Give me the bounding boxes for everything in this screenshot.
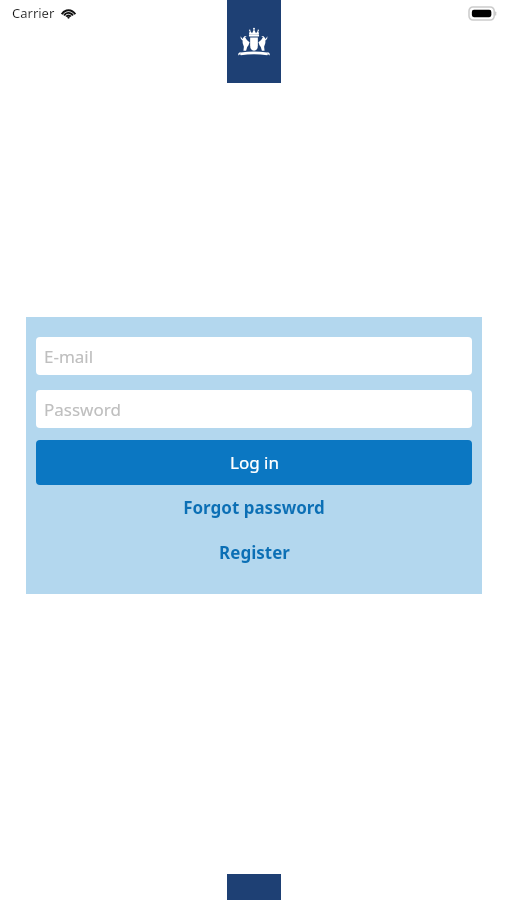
button[interactable]: Password [36, 390, 472, 428]
button[interactable]: Log in [36, 440, 472, 485]
button[interactable]: E-mail [36, 337, 472, 375]
staticText: Password [44, 398, 121, 421]
staticText: Register [219, 541, 290, 564]
staticText: Carrier [12, 4, 55, 22]
staticText: Log in [230, 451, 279, 474]
button[interactable]: Register [36, 530, 472, 574]
staticText: E-mail [44, 345, 94, 368]
staticText: Forgot password [183, 496, 325, 519]
button[interactable]: Forgot password [36, 485, 472, 530]
